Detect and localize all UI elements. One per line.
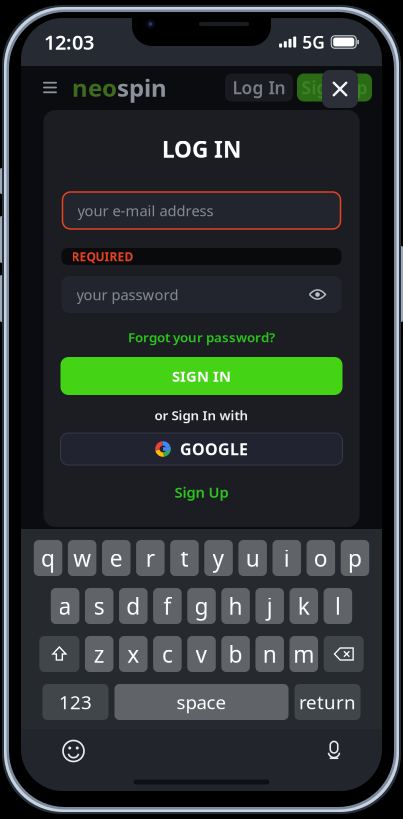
staticText: i bbox=[284, 543, 290, 573]
staticText: neo bbox=[72, 72, 117, 103]
staticText: 123 bbox=[59, 690, 92, 714]
staticText: w bbox=[73, 543, 91, 573]
button[interactable]: Dictation bbox=[327, 740, 341, 761]
staticText: r bbox=[146, 543, 155, 573]
staticText: SIGN IN bbox=[172, 366, 231, 386]
button[interactable]: Sign Up bbox=[297, 73, 372, 101]
button[interactable]: n bbox=[255, 636, 284, 672]
button[interactable]: Forgot your password? bbox=[128, 329, 275, 345]
staticText: q bbox=[41, 543, 55, 573]
button[interactable]: v bbox=[187, 636, 216, 672]
button[interactable]: a bbox=[51, 588, 79, 624]
staticText: k bbox=[298, 591, 310, 621]
button[interactable]: z bbox=[85, 636, 113, 672]
button[interactable]: s bbox=[85, 588, 113, 624]
staticText: o bbox=[314, 543, 328, 573]
staticText: m bbox=[293, 639, 314, 669]
button[interactable]: return bbox=[294, 684, 360, 720]
button[interactable]: j bbox=[255, 588, 284, 624]
staticText: j bbox=[267, 591, 273, 621]
button[interactable]: o bbox=[307, 540, 335, 576]
button[interactable]: g bbox=[187, 588, 216, 624]
button[interactable]: Close bbox=[322, 70, 358, 108]
staticText: s bbox=[94, 591, 105, 621]
staticText: z bbox=[94, 639, 105, 669]
button[interactable]: Menu bbox=[40, 74, 60, 100]
button[interactable]: p bbox=[341, 540, 369, 576]
staticText: u bbox=[246, 543, 260, 573]
staticText: Forgot your password? bbox=[128, 328, 275, 346]
staticText: Sign Up bbox=[301, 76, 367, 99]
staticText: b bbox=[229, 639, 243, 669]
staticText: 5G bbox=[302, 30, 325, 53]
staticText: or Sign In with bbox=[154, 406, 248, 424]
staticText: your password bbox=[76, 285, 178, 304]
button[interactable]: Delete bbox=[324, 636, 364, 672]
staticText: g bbox=[194, 591, 208, 621]
staticText: l bbox=[335, 591, 341, 621]
staticText: f bbox=[163, 591, 171, 621]
staticText: x bbox=[127, 639, 139, 669]
staticText: y bbox=[213, 543, 225, 573]
staticText: GOOGLE bbox=[180, 438, 248, 460]
button[interactable]: w bbox=[68, 540, 96, 576]
button[interactable]: GOOGLE bbox=[60, 433, 342, 465]
button[interactable]: Shift bbox=[39, 636, 79, 672]
staticText: h bbox=[229, 591, 243, 621]
staticText: v bbox=[195, 639, 207, 669]
button[interactable]: c bbox=[153, 636, 182, 672]
button[interactable]: Sign Up bbox=[174, 484, 228, 500]
staticText: Sign Up bbox=[174, 482, 228, 502]
button[interactable]: q bbox=[34, 540, 62, 576]
staticText: your e-mail address bbox=[77, 201, 213, 220]
staticText: a bbox=[59, 591, 72, 621]
staticText: spin bbox=[117, 72, 167, 103]
button[interactable]: 123 bbox=[42, 684, 108, 720]
button[interactable]: e bbox=[102, 540, 130, 576]
button[interactable]: t bbox=[170, 540, 199, 576]
staticText: REQUIRED bbox=[71, 248, 133, 264]
staticText: return bbox=[299, 690, 356, 714]
button[interactable]: space bbox=[114, 684, 288, 720]
button[interactable]: b bbox=[221, 636, 250, 672]
button[interactable]: u bbox=[238, 540, 267, 576]
staticText: p bbox=[348, 543, 362, 573]
staticText: d bbox=[126, 591, 140, 621]
button[interactable]: m bbox=[289, 636, 318, 672]
button[interactable]: Log In bbox=[225, 73, 293, 101]
staticText: n bbox=[263, 639, 277, 669]
staticText: space bbox=[176, 690, 226, 714]
staticText: c bbox=[162, 639, 173, 669]
button[interactable]: SIGN IN bbox=[60, 357, 342, 395]
staticText: LOG IN bbox=[162, 134, 241, 164]
button[interactable]: Emoji bbox=[62, 739, 85, 762]
button[interactable]: l bbox=[324, 588, 352, 624]
staticText: t bbox=[180, 543, 188, 573]
button[interactable]: r bbox=[136, 540, 165, 576]
staticText: 12:03 bbox=[44, 29, 94, 55]
button[interactable]: x bbox=[119, 636, 147, 672]
button[interactable]: h bbox=[221, 588, 250, 624]
button[interactable]: d bbox=[119, 588, 147, 624]
button[interactable]: f bbox=[153, 588, 182, 624]
button[interactable]: i bbox=[272, 540, 301, 576]
staticText: Log In bbox=[232, 76, 285, 99]
button[interactable]: k bbox=[289, 588, 318, 624]
staticText: e bbox=[110, 543, 123, 573]
button[interactable]: y bbox=[204, 540, 233, 576]
